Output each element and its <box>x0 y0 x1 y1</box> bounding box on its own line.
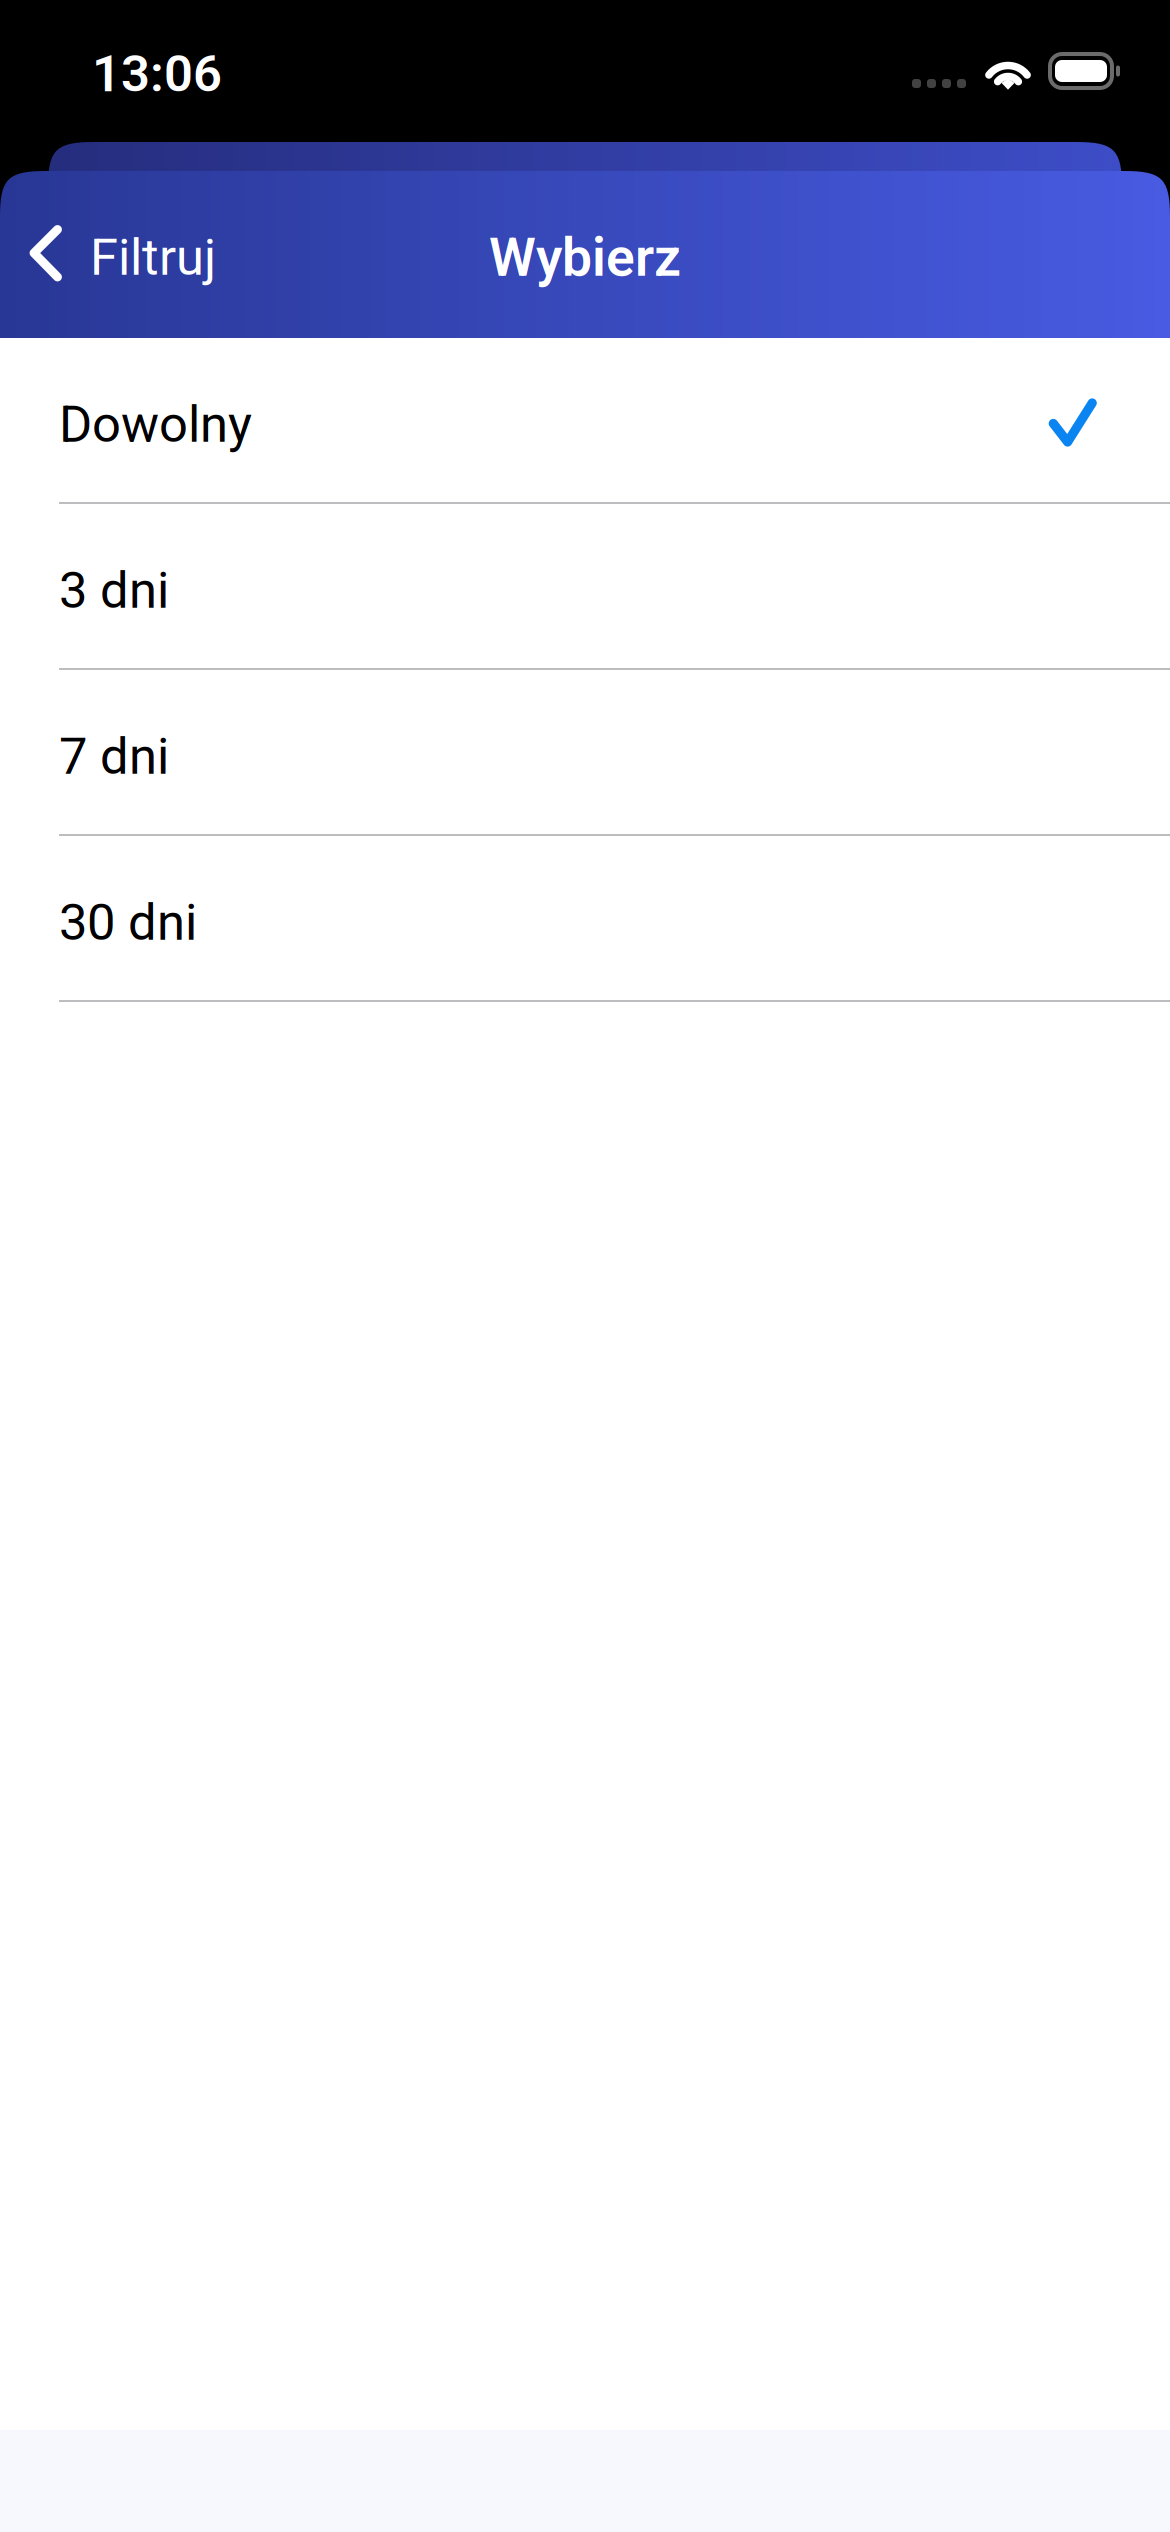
staticText: 7 dni <box>59 727 169 786</box>
staticText: Dowolny <box>59 395 252 454</box>
button[interactable]: 7 dni <box>0 670 1170 836</box>
button[interactable]: Dowolny <box>0 338 1170 504</box>
button[interactable]: 3 dni <box>0 504 1170 670</box>
staticText: 30 dni <box>59 893 197 952</box>
button[interactable]: Back to Filtruj <box>0 171 246 338</box>
staticText: Wybierz <box>489 226 681 289</box>
staticText: 13:06 <box>92 44 222 104</box>
staticText: Filtruj <box>90 228 216 287</box>
button[interactable]: 30 dni <box>0 836 1170 1002</box>
staticText: 3 dni <box>59 561 169 620</box>
